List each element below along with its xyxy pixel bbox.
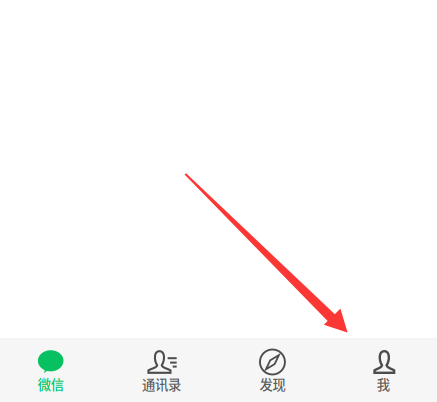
button[interactable]: 发现 Discover (217, 338, 328, 402)
staticText: 微信 (38, 374, 64, 393)
button[interactable]: 微信 Chats (0, 338, 106, 402)
staticText: 通讯录 (142, 374, 181, 393)
staticText: 发现 (259, 374, 285, 393)
button[interactable]: 通讯录 Contacts (106, 338, 217, 402)
button[interactable]: 我 Me (328, 338, 437, 402)
staticText: 我 (377, 374, 390, 393)
